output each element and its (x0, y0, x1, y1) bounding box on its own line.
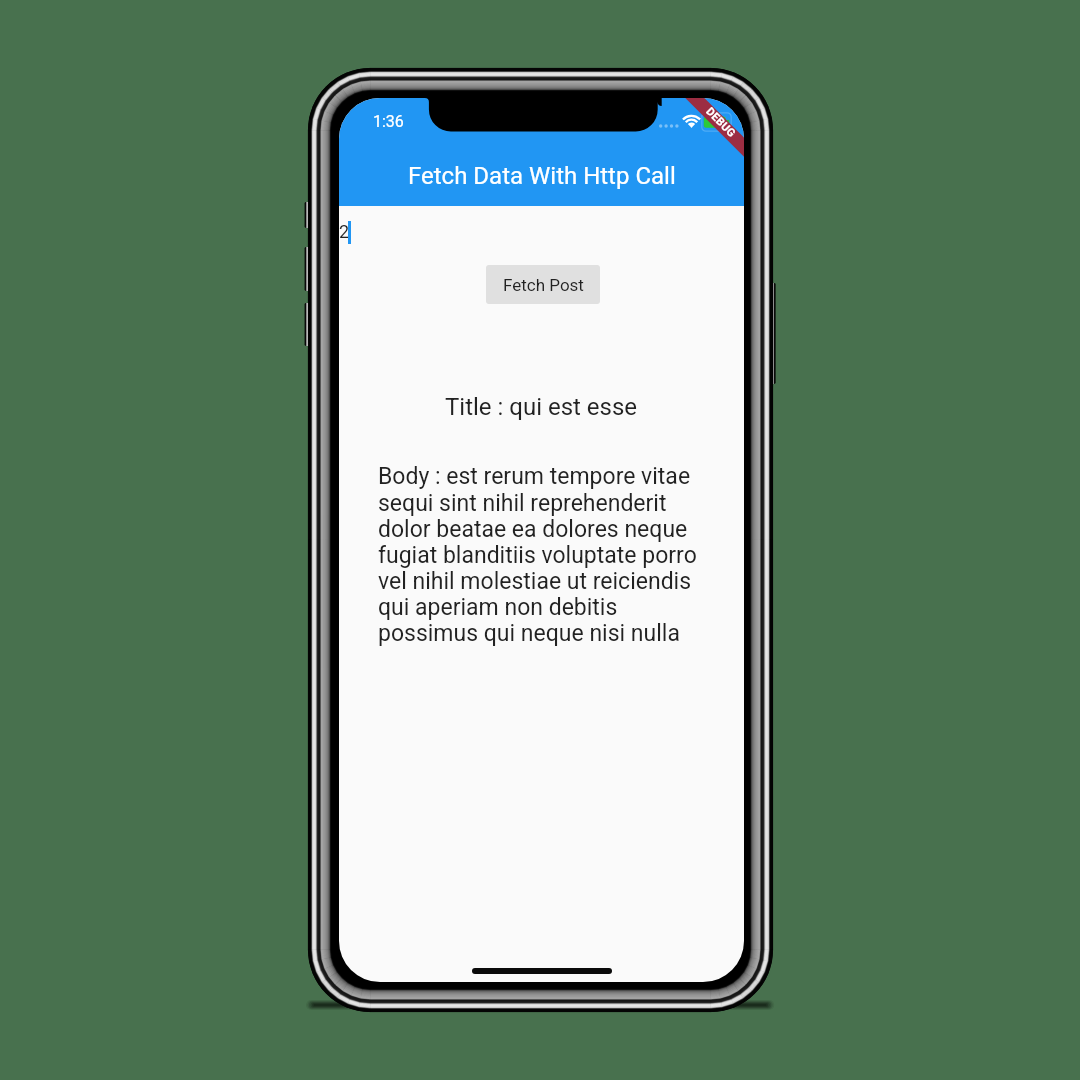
staticText: DEBUG (703, 105, 739, 140)
staticText: Fetch Data With Http Call (408, 162, 676, 190)
button[interactable]: Fetch Post (486, 265, 600, 304)
other: Wi-Fi (683, 115, 700, 128)
staticText: Fetch Post (503, 275, 584, 295)
staticText: 2 (339, 221, 350, 242)
staticText: 1:36 (373, 112, 404, 131)
other: Battery charging (701, 112, 732, 132)
staticText: Body : est rerum tempore vitae sequi sin… (378, 463, 704, 646)
staticText: Title : qui est esse (445, 393, 638, 421)
